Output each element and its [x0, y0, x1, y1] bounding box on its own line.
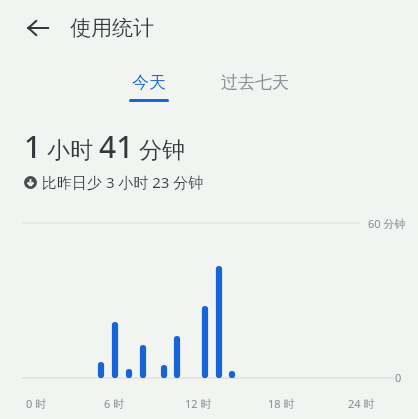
staticText: 12 时 [185, 396, 212, 411]
staticText: 分钟 [139, 136, 185, 165]
button[interactable]: 今天 [121, 70, 177, 104]
staticText: 0 [395, 370, 402, 385]
staticText: 小时 [47, 136, 93, 165]
staticText: 0 时 [26, 396, 47, 411]
staticText: 今天 [132, 72, 166, 93]
staticText: 6 时 [104, 396, 125, 411]
staticText: 60 分钟 [368, 216, 406, 231]
staticText: 使用统计 [70, 15, 154, 41]
staticText: 41 [99, 126, 134, 167]
button[interactable]: Back [20, 10, 56, 46]
staticText: 过去七天 [221, 72, 289, 93]
button[interactable]: 过去七天 [213, 70, 297, 95]
staticText: 1 [24, 126, 42, 167]
staticText: 18 时 [268, 396, 295, 411]
staticText: 比昨日少 3 小时 23 分钟 [42, 172, 204, 192]
staticText: 24 时 [348, 396, 375, 411]
